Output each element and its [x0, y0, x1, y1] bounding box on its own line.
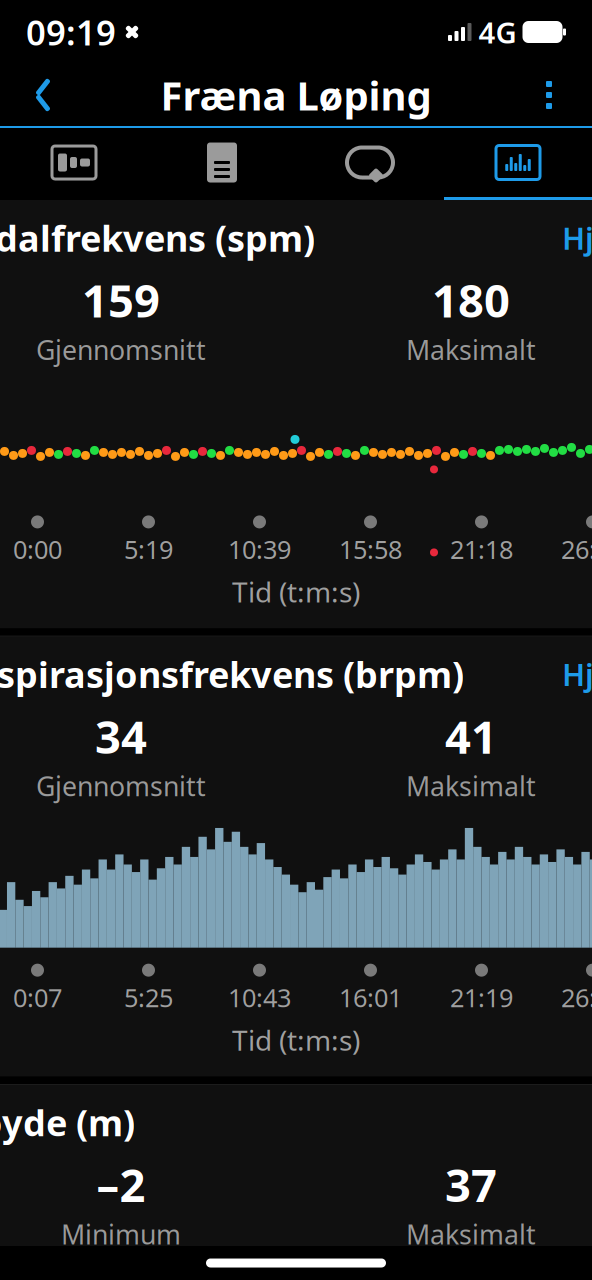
staticText: 5:19 [124, 532, 173, 566]
staticText: Hjelp [562, 654, 592, 694]
button[interactable]: Back [14, 66, 72, 124]
staticText: Pedalfrekvens (spm) [0, 214, 315, 262]
staticText: 34 [95, 706, 147, 766]
button[interactable]: More options [520, 66, 578, 124]
staticText: Tid (t:m:s) [232, 1021, 360, 1058]
staticText: 37 [445, 1154, 497, 1214]
button[interactable]: Hjelp [562, 654, 592, 694]
staticText: 15:58 [339, 532, 402, 566]
staticText: Respirasjonsfrekvens (brpm) [0, 650, 464, 698]
staticText: 41 [445, 706, 497, 766]
staticText: 0:00 [13, 532, 62, 566]
staticText: Gjennomsnitt [36, 768, 206, 804]
staticText: Fræna Løping [160, 68, 431, 121]
staticText: Maksimalt [406, 1216, 536, 1252]
staticText: 180 [432, 270, 510, 330]
staticText: Minimum [61, 1216, 181, 1252]
staticText: Høyde (m) [0, 1098, 135, 1146]
button[interactable]: Hjelp [562, 217, 592, 258]
button[interactable]: Charts [444, 128, 592, 200]
button[interactable]: Map [0, 128, 148, 200]
staticText: Hjelp [562, 217, 592, 258]
staticText: 21:19 [450, 981, 513, 1014]
staticText: Maksimalt [406, 332, 536, 367]
button[interactable]: Details [148, 128, 296, 200]
staticText: Tid (t:m:s) [232, 573, 360, 610]
staticText: Gjennomsnitt [36, 332, 206, 367]
staticText: 5:25 [124, 981, 173, 1014]
button[interactable]: Laps [296, 128, 444, 200]
staticText: 26:38 [561, 532, 592, 566]
staticText: 159 [82, 270, 160, 330]
staticText: 0:07 [13, 981, 62, 1014]
staticText: 09:19 [26, 9, 116, 55]
staticText: 16:01 [339, 981, 402, 1014]
staticText: –2 [96, 1154, 145, 1214]
staticText: 10:43 [228, 981, 291, 1014]
staticText: Maksimalt [406, 768, 536, 804]
staticText: 4G [478, 12, 516, 51]
staticText: 21:18 [450, 532, 513, 566]
staticText: 10:39 [228, 532, 291, 566]
staticText: 26:38 [561, 981, 592, 1014]
